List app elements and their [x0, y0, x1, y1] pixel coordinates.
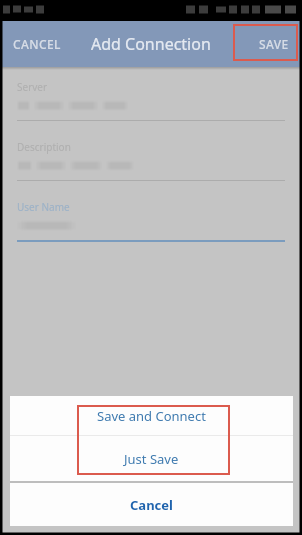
staticText: Save and Connect	[97, 407, 206, 425]
button[interactable]: Cancel	[10, 483, 293, 526]
staticText: Server	[17, 80, 48, 94]
button[interactable]	[17, 197, 285, 242]
button[interactable]: Save and Connect	[10, 396, 293, 435]
button[interactable]	[17, 137, 285, 182]
staticText: Cancel	[130, 496, 173, 514]
staticText: CANCEL	[13, 36, 61, 52]
staticText: SAVE	[259, 36, 289, 52]
button[interactable]: SAVE	[251, 27, 297, 61]
button[interactable]: CANCEL	[5, 27, 69, 61]
staticText: Add Connection	[91, 33, 211, 55]
staticText: Just Save	[124, 450, 179, 468]
button[interactable]: Just Save	[10, 436, 293, 481]
staticText: Description	[17, 140, 71, 154]
button[interactable]	[17, 77, 285, 122]
staticText: User Name	[17, 200, 70, 214]
